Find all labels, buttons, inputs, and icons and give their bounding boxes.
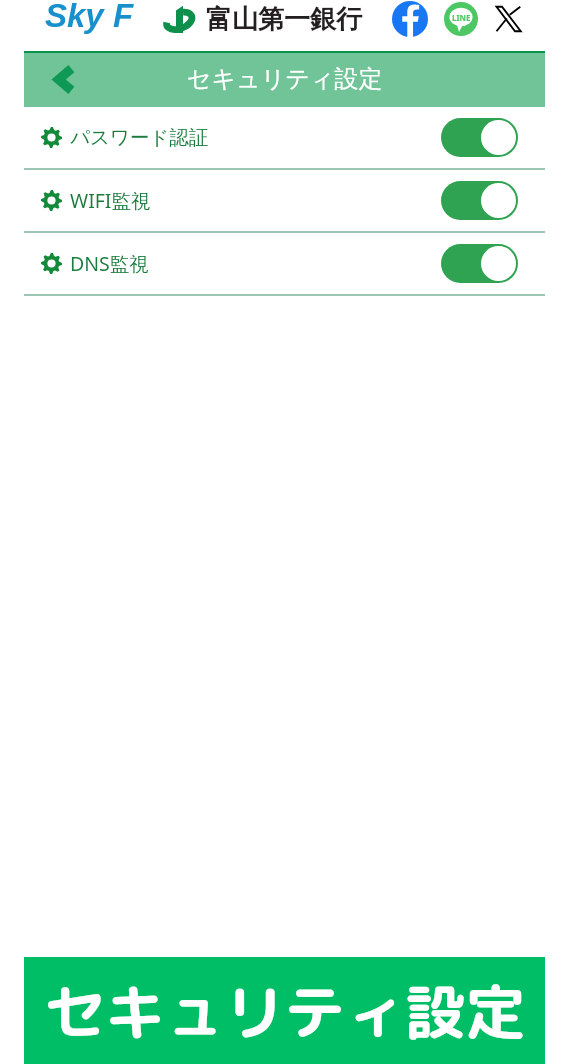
button[interactable]: セキュリティ設定 [24,957,545,1064]
staticText: セキュリティ設定 [187,64,383,94]
staticText: LINE [452,12,471,23]
button[interactable]: DNS監視 [0,233,569,294]
button[interactable]: パスワード認証 [0,107,569,168]
button[interactable]: X [489,0,527,38]
staticText: 富山第一銀行 [206,3,362,36]
staticText: DNS監視 [70,250,149,277]
staticText: Sky F [45,0,134,34]
button[interactable]: Toggle on [441,118,518,157]
staticText: パスワード認証 [70,125,209,150]
button[interactable]: Back [37,51,93,107]
staticText: セキュリティ設定 [45,969,525,1053]
button[interactable]: Toggle on [441,244,518,283]
button[interactable]: Facebook [391,0,429,38]
staticText: WIFI監視 [70,187,151,214]
button[interactable]: WIFI監視 [0,170,569,231]
button[interactable]: LINE [442,0,480,38]
button[interactable]: Toggle on [441,181,518,220]
